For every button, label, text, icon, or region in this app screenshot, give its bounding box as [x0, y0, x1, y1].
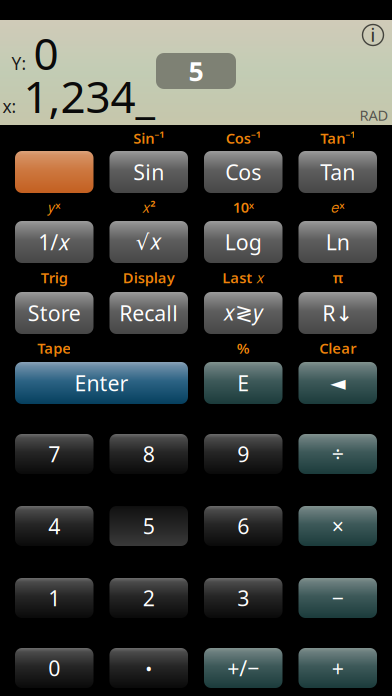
staticText: Y: [11, 52, 26, 75]
staticText: x: [2, 95, 16, 118]
staticText: √𝑥 [136, 230, 162, 254]
staticText: ◄ [330, 372, 345, 394]
staticText: 8 [143, 440, 155, 468]
staticText: Ln [326, 228, 350, 256]
staticText: 3 [237, 584, 249, 612]
staticText: 6 [237, 512, 249, 540]
button[interactable]: × [298, 506, 377, 546]
button[interactable]: ÷ [298, 434, 377, 474]
staticText: 𝑥² [142, 197, 155, 217]
button[interactable]: 2 [109, 578, 188, 618]
staticText: × [332, 512, 344, 540]
staticText: Trig [41, 268, 68, 287]
staticText: RAD [359, 105, 388, 125]
staticText: 𝑥≷𝑦 [223, 301, 263, 325]
button[interactable]: √𝑥 [109, 221, 188, 263]
staticText: 5 [188, 53, 203, 89]
staticText: 0 [48, 654, 60, 682]
staticText: Enter [74, 369, 128, 397]
button[interactable]: 4 [15, 506, 93, 546]
staticText: Recall [119, 299, 178, 327]
staticText: Sin⁻¹ [133, 128, 164, 148]
button[interactable]: Enter [15, 362, 188, 404]
staticText: R↓ [322, 299, 353, 327]
button[interactable]: 3 [204, 578, 282, 618]
staticText: 4 [48, 512, 60, 540]
staticText: 𝑦ˣ [48, 197, 60, 217]
staticText: 2 [143, 584, 155, 612]
staticText: Tape [37, 338, 71, 358]
staticText: E [237, 369, 249, 397]
staticText: Log [225, 228, 262, 256]
button[interactable]: 1/𝑥 [15, 221, 93, 263]
staticText: 1,234_ [23, 67, 155, 125]
button[interactable]: − [298, 578, 377, 618]
button[interactable]: Log [204, 221, 282, 263]
button[interactable]: • [109, 648, 188, 688]
button[interactable]: ◄ [298, 362, 377, 404]
staticText: Store [28, 299, 81, 327]
button[interactable]: E [204, 362, 282, 404]
staticText: 9 [237, 440, 249, 468]
staticText: Tan⁻¹ [320, 128, 355, 148]
button[interactable]: Info [362, 24, 383, 45]
staticText: Sin [133, 158, 164, 186]
button[interactable]: +/− [204, 648, 282, 688]
button[interactable]: Sin [109, 151, 188, 193]
button[interactable]: Tan [298, 151, 377, 193]
button[interactable]: Recall [109, 292, 188, 334]
button[interactable]: Cos [204, 151, 282, 193]
staticText: 5 [143, 512, 155, 540]
staticText: Display [123, 268, 175, 287]
staticText: % [237, 338, 250, 358]
staticText: Cos⁻¹ [226, 128, 261, 148]
button[interactable]: 8 [109, 434, 188, 474]
staticText: 1 [48, 584, 60, 612]
button[interactable]: 𝑥≷𝑦 [204, 292, 282, 334]
staticText: • [145, 656, 152, 680]
button[interactable]: + [298, 648, 377, 688]
staticText: π [333, 268, 343, 287]
staticText: +/− [227, 654, 259, 682]
staticText: 1/𝑥 [38, 228, 70, 256]
staticText: i [370, 23, 375, 46]
staticText: ÷ [332, 440, 344, 468]
button[interactable]: 9 [204, 434, 282, 474]
staticText: 𝑒ˣ [331, 197, 344, 217]
button[interactable]: 5 [109, 506, 188, 546]
staticText: Clear [319, 338, 356, 358]
staticText: + [332, 654, 344, 682]
staticText: Cos [225, 158, 261, 186]
staticText: Tan [320, 158, 355, 186]
staticText: 0 [33, 24, 58, 82]
button[interactable]: 1 [15, 578, 93, 618]
staticText: 7 [48, 440, 60, 468]
button[interactable]: 7 [15, 434, 93, 474]
button[interactable]: 0 [15, 648, 93, 688]
button[interactable]: R↓ [298, 292, 377, 334]
button[interactable]: Ln [298, 221, 377, 263]
button[interactable]: 6 [204, 506, 282, 546]
staticText: Last 𝑥 [222, 268, 264, 287]
button[interactable]: Store [15, 292, 93, 334]
staticText: 10ˣ [233, 197, 254, 217]
button[interactable] [15, 151, 93, 193]
staticText: − [332, 584, 344, 612]
